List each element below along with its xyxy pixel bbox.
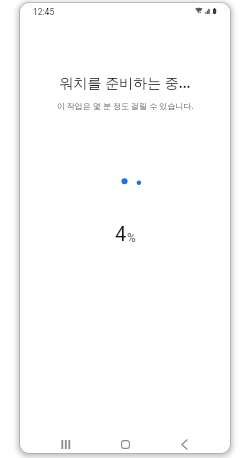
staticText: 4 bbox=[115, 222, 127, 245]
staticText: % bbox=[127, 231, 136, 245]
staticText: 이 작업은 몇 분 정도 걸릴 수 있습니다. bbox=[20, 100, 230, 111]
staticText: 워치를 준비하는 중... bbox=[20, 73, 230, 92]
staticText: 12:45 bbox=[33, 7, 55, 17]
button[interactable]: Recent apps bbox=[53, 436, 79, 452]
button[interactable]: Home bbox=[112, 436, 138, 452]
button[interactable]: Back bbox=[171, 436, 197, 452]
